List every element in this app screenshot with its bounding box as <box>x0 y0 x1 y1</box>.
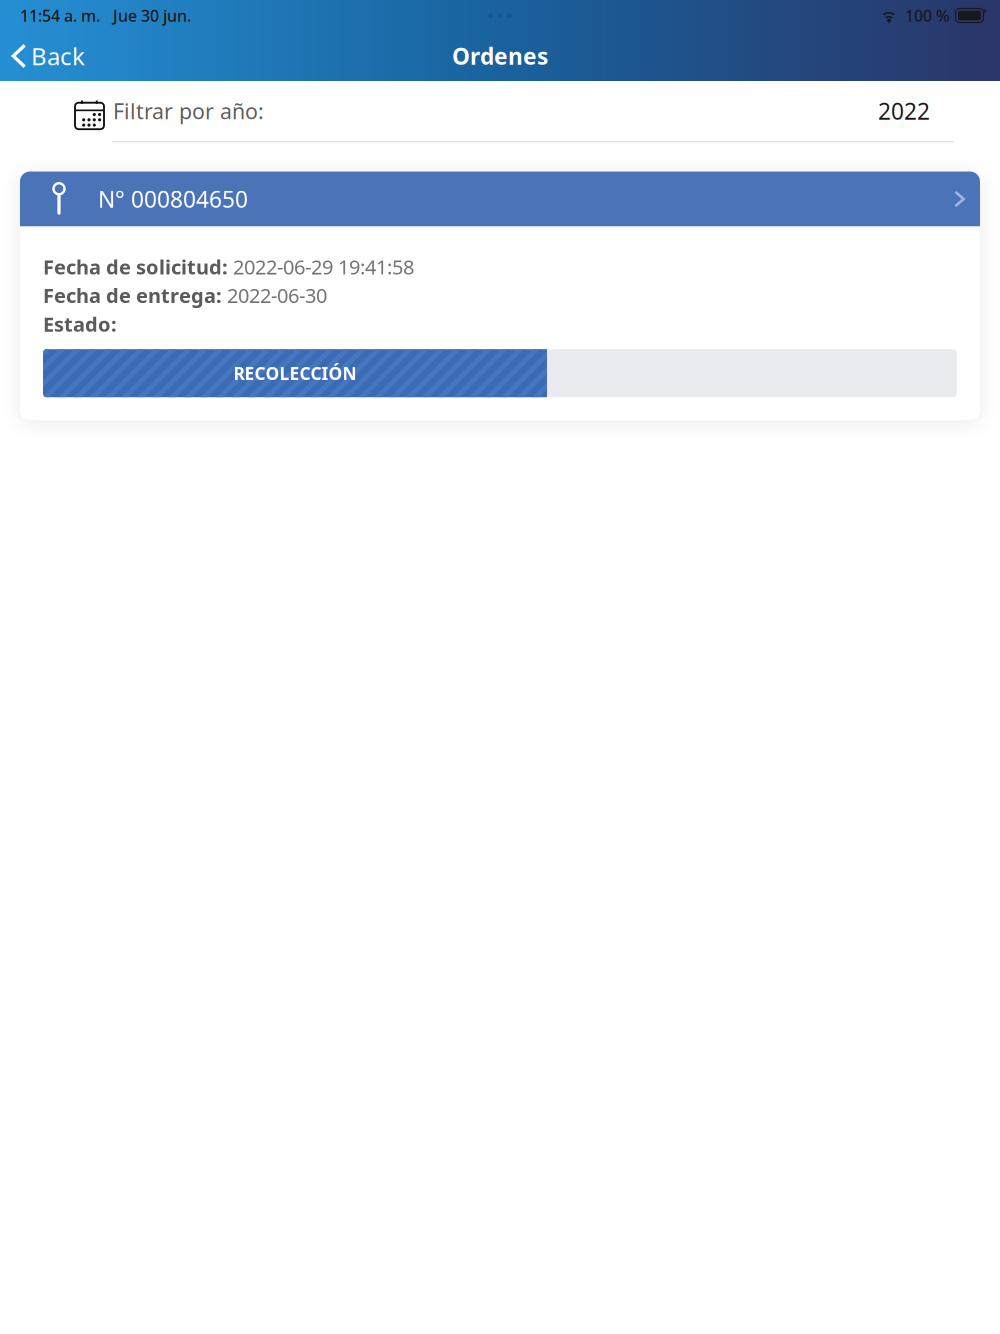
staticText: Jue 30 jun. <box>113 5 191 26</box>
staticText: 2022-06-30 <box>227 282 327 309</box>
staticText: Fecha de entrega: <box>43 282 222 309</box>
button[interactable]: N° 000804650 <box>20 171 980 226</box>
staticText: Ordenes <box>452 41 548 71</box>
staticText: 11:54 a. m. <box>20 5 100 26</box>
staticText: RECOLECCIÓN <box>233 362 356 385</box>
staticText: Back <box>31 40 85 72</box>
staticText: Estado: <box>43 311 117 337</box>
staticText: Filtrar por año: <box>113 97 264 125</box>
staticText: 2022-06-29 19:41:58 <box>233 253 414 280</box>
staticText: N° 000804650 <box>98 184 248 214</box>
staticText: 100 % <box>905 5 950 26</box>
staticText: 2022 <box>878 96 930 126</box>
staticText: Fecha de solicitud: <box>43 253 228 280</box>
button[interactable]: Filtrar por año: <box>0 81 1000 142</box>
button[interactable]: Back <box>0 33 99 79</box>
